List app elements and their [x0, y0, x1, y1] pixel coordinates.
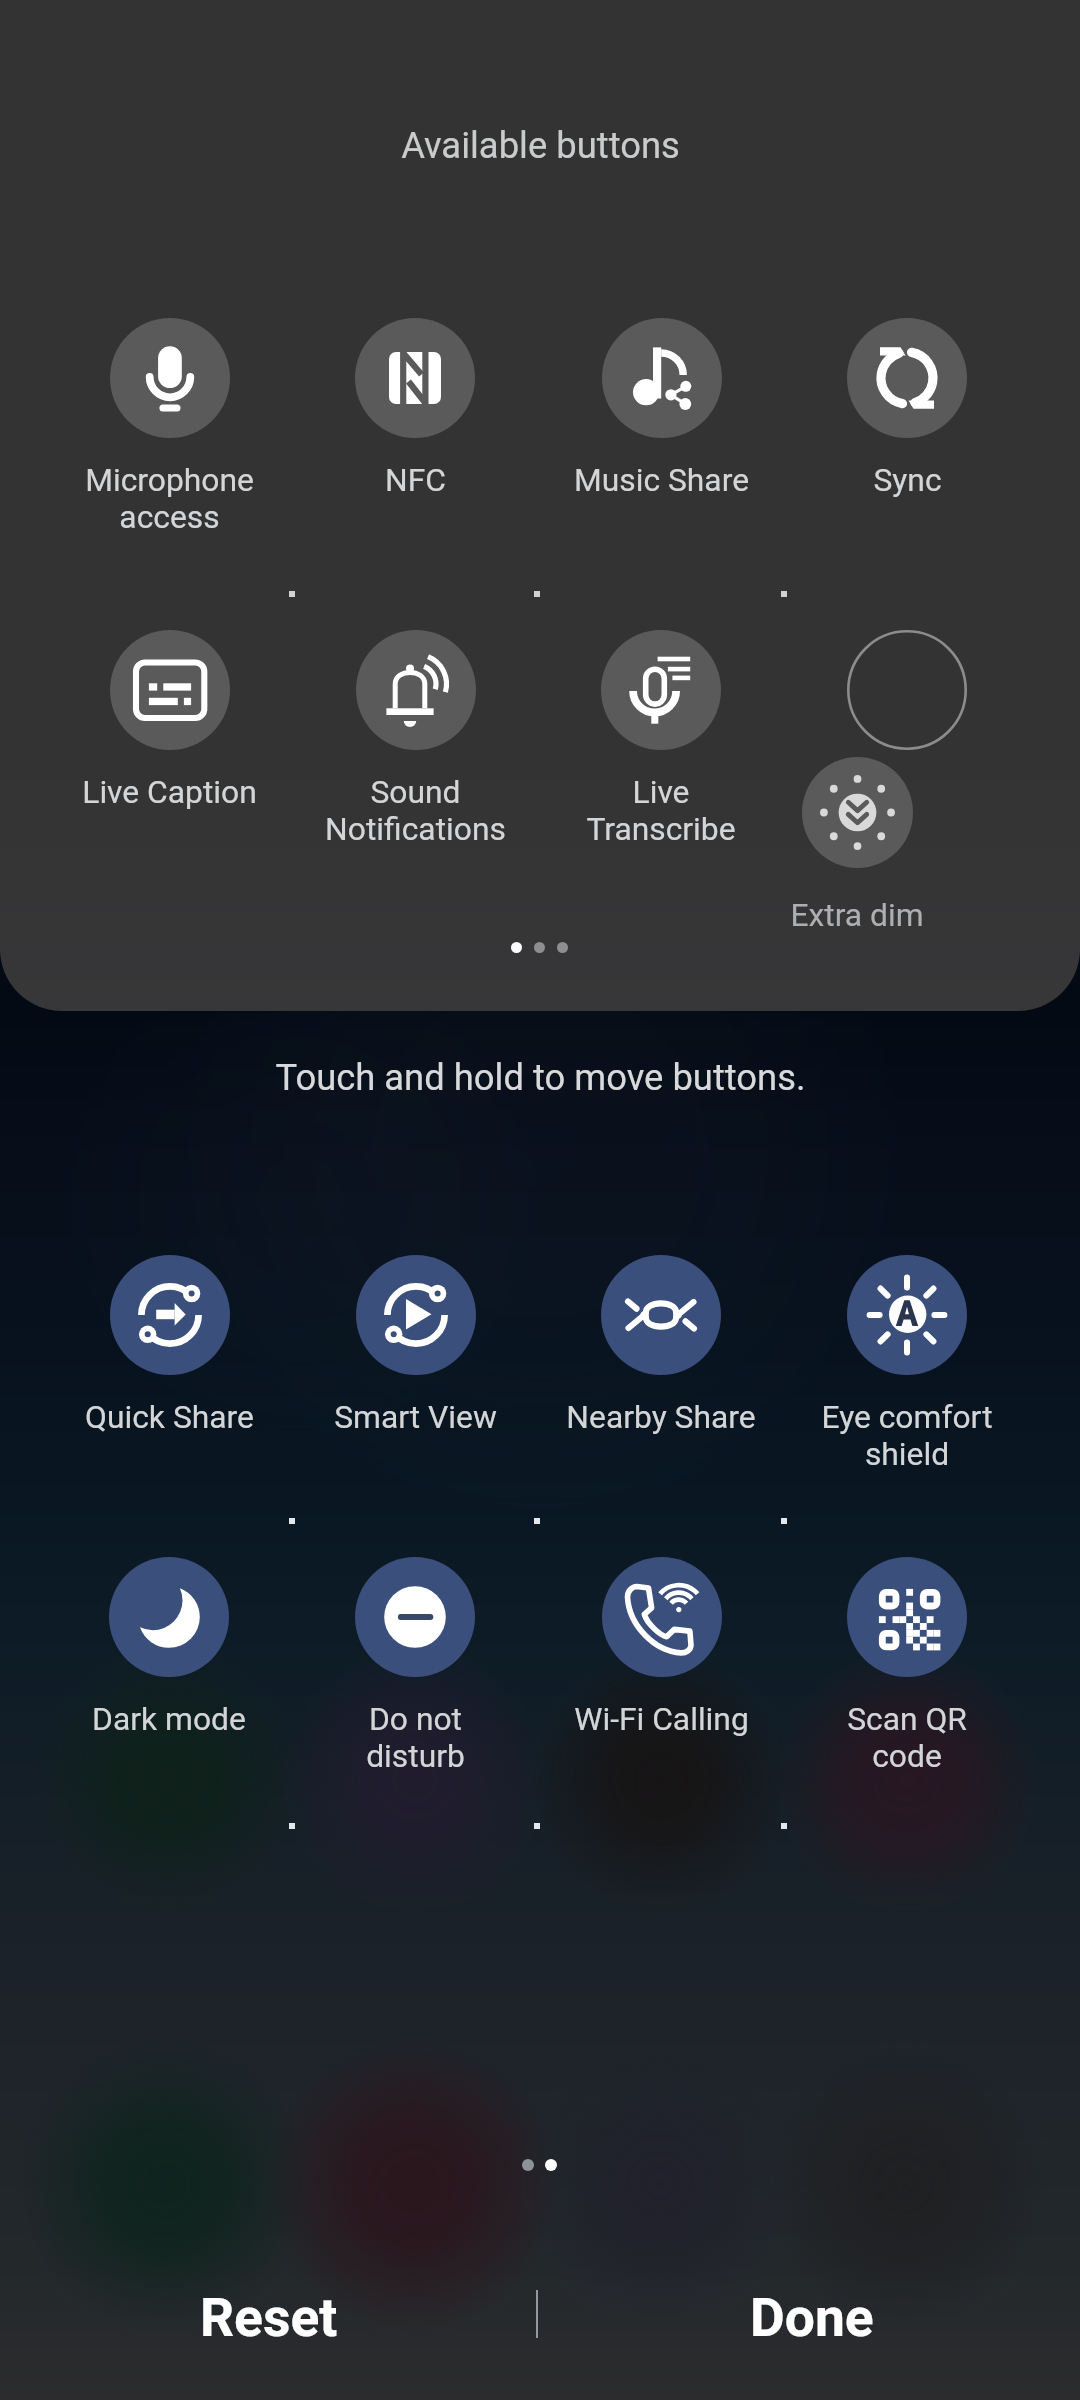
staticText: Wi-Fi Calling — [574, 1700, 749, 1737]
staticText: Live Transcribe — [586, 773, 736, 845]
staticText: Sound Notifications — [325, 773, 506, 845]
button[interactable]: Sound Notifications — [292, 630, 538, 845]
staticText: Nearby Share — [566, 1398, 756, 1435]
button[interactable]: Extra dim — [734, 757, 980, 972]
button[interactable]: Nearby Share — [538, 1255, 784, 1470]
button[interactable]: Live Caption — [46, 630, 292, 845]
staticText: Extra dim — [790, 896, 924, 933]
staticText: Microphone access — [85, 461, 254, 533]
staticText: Music Share — [574, 461, 749, 498]
staticText: Touch and hold to move buttons. — [275, 1056, 806, 1099]
button[interactable]: Scan QR code — [784, 1557, 1030, 1772]
staticText: Scan QR code — [847, 1700, 967, 1772]
button[interactable]: Eye comfort shield — [784, 1255, 1030, 1470]
staticText: NFC — [385, 461, 446, 498]
button[interactable]: Music Share — [538, 318, 784, 533]
staticText: Dark mode — [92, 1700, 246, 1737]
button[interactable]: Sync — [784, 318, 1030, 533]
button[interactable]: Smart View — [292, 1255, 538, 1470]
staticText: Do not disturb — [366, 1700, 465, 1772]
button[interactable]: Microphone access — [46, 318, 292, 533]
staticText: Available buttons — [401, 124, 680, 167]
button[interactable]: Quick Share — [46, 1255, 292, 1470]
button[interactable]: Live Transcribe — [538, 630, 784, 845]
button[interactable]: NFC — [292, 318, 538, 533]
button[interactable]: Reset — [0, 2248, 537, 2386]
staticText: Smart View — [334, 1398, 497, 1435]
staticText: Sync — [873, 461, 942, 498]
staticText: Done — [750, 2286, 874, 2349]
staticText: Eye comfort shield — [821, 1398, 993, 1470]
staticText: Quick Share — [85, 1398, 254, 1435]
button[interactable]: Do not disturb — [292, 1557, 538, 1772]
button[interactable]: Dark mode — [46, 1557, 292, 1772]
staticText: Live Caption — [82, 773, 257, 810]
button[interactable]: Done — [543, 2248, 1080, 2386]
staticText: Reset — [200, 2286, 338, 2349]
button[interactable]: Wi-Fi Calling — [538, 1557, 784, 1772]
